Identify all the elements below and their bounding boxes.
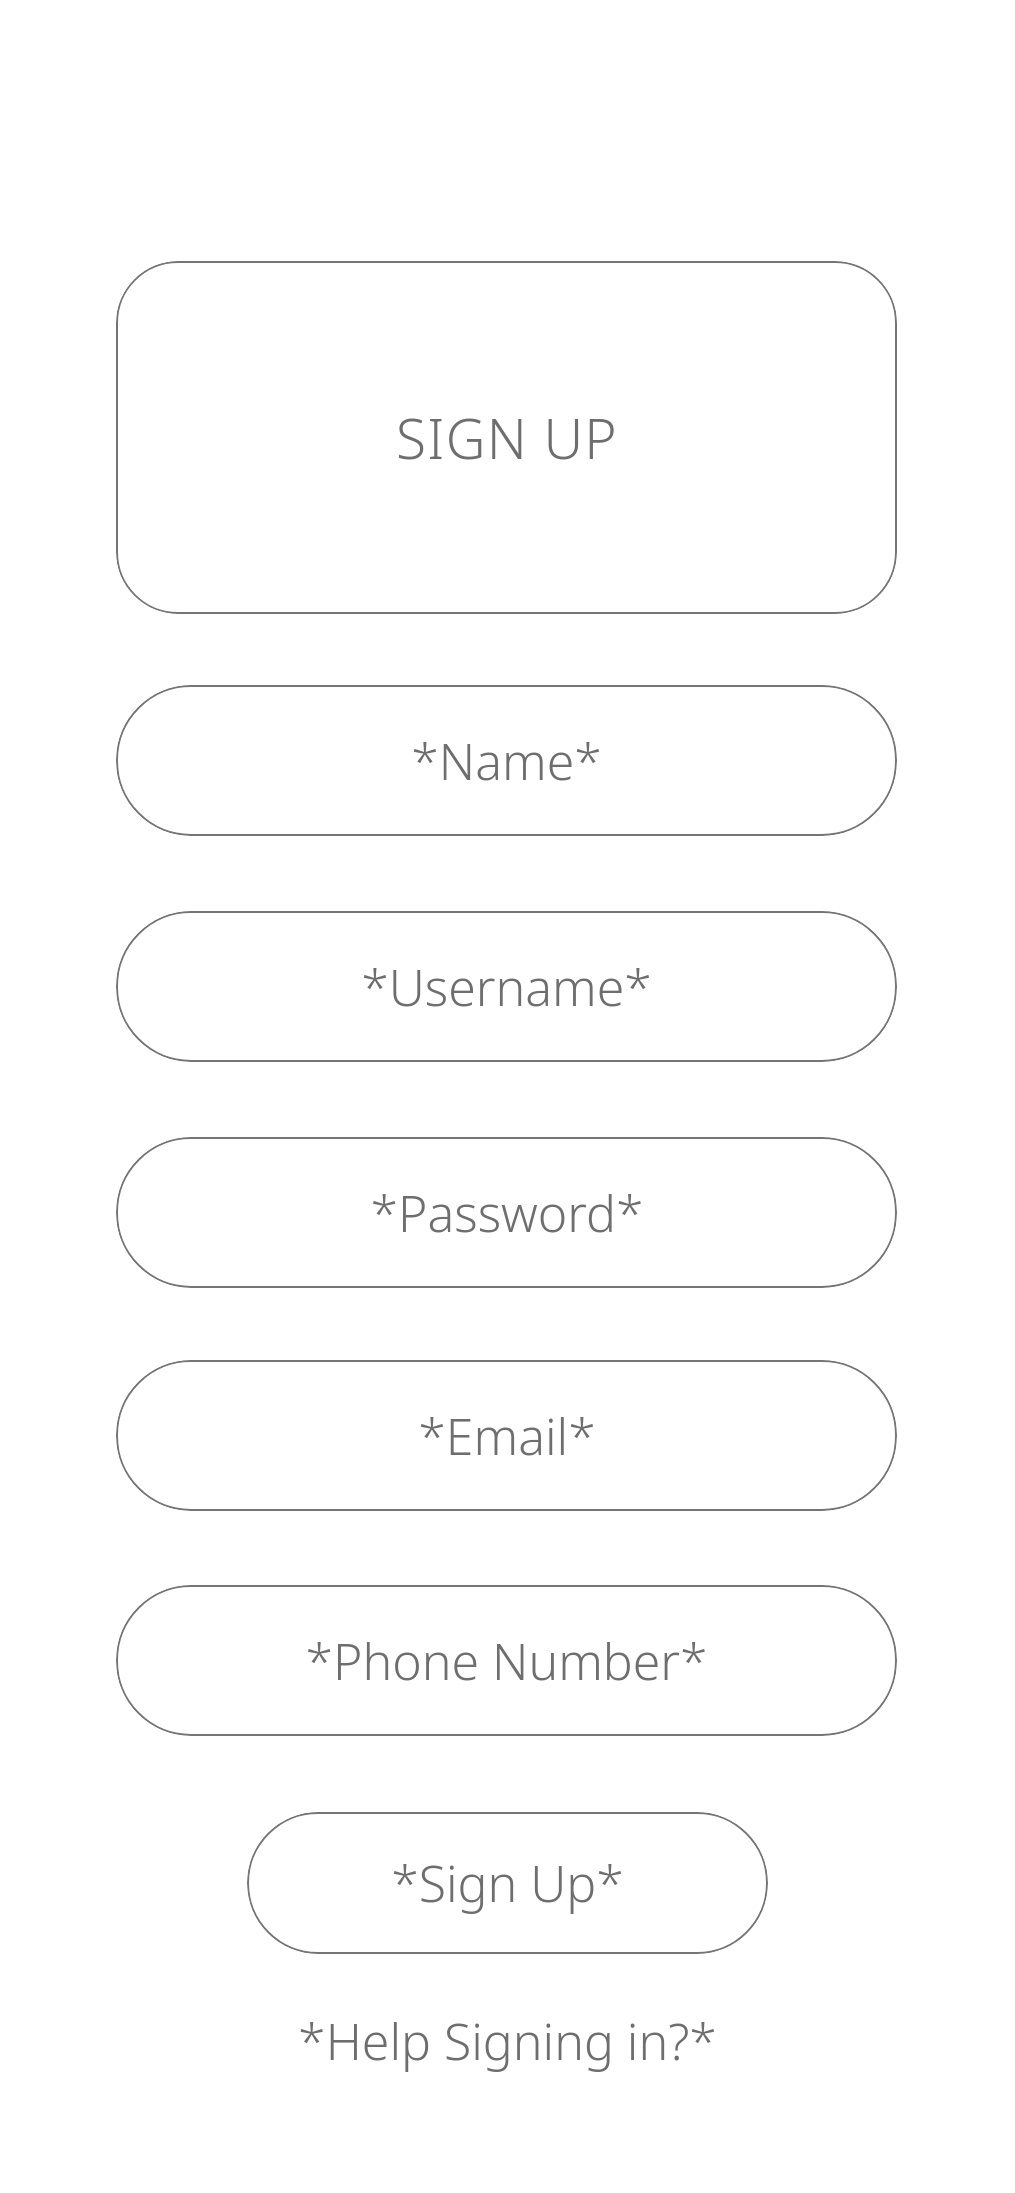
staticText: *Sign Up*: [391, 1849, 624, 1917]
staticText: *Password*: [370, 1179, 644, 1247]
button[interactable]: SIGN UP: [116, 261, 897, 614]
staticText: *Phone Number*: [305, 1627, 708, 1695]
button[interactable]: *Sign Up*: [247, 1812, 768, 1954]
button[interactable]: *Name*: [116, 685, 897, 836]
button[interactable]: *Email*: [116, 1360, 897, 1511]
staticText: SIGN UP: [396, 400, 618, 475]
staticText: *Email*: [418, 1402, 596, 1470]
staticText: *Name*: [411, 727, 602, 795]
button[interactable]: *Username*: [116, 911, 897, 1062]
button[interactable]: *Password*: [116, 1137, 897, 1288]
staticText: *Help Signing in?*: [298, 2007, 717, 2075]
button[interactable]: *Help Signing in?*: [0, 1998, 1015, 2084]
button[interactable]: *Phone Number*: [116, 1585, 897, 1736]
staticText: *Username*: [361, 953, 652, 1021]
